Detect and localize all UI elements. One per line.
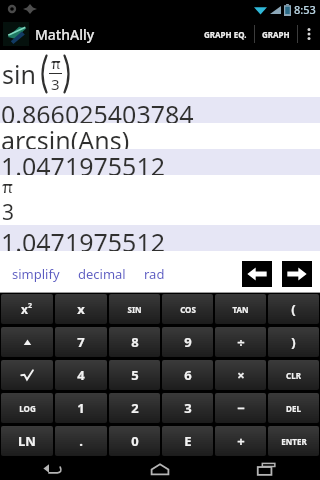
button[interactable]: GRAPH	[255, 18, 297, 50]
staticText: sin	[2, 57, 36, 91]
button[interactable]: simplify	[10, 261, 62, 287]
staticText: E	[184, 432, 192, 450]
button[interactable]: 0	[109, 426, 160, 456]
staticText: )	[291, 333, 296, 351]
staticText: simplify	[12, 265, 60, 283]
staticText: 1.0471975512	[1, 225, 166, 251]
button[interactable]: DEL	[268, 393, 319, 423]
staticText: 8	[131, 333, 139, 351]
button[interactable]: Move right	[282, 261, 312, 287]
button[interactable]: ÷	[215, 327, 266, 357]
button[interactable]: 6	[162, 360, 213, 390]
staticText: SIN	[127, 304, 142, 315]
staticText: ×	[237, 366, 245, 384]
button[interactable]: GRAPH EQ.	[197, 18, 254, 50]
staticText: 3	[2, 198, 15, 225]
button[interactable]: 1	[55, 393, 107, 423]
button[interactable]: 1.0471975512	[0, 149, 320, 175]
staticText: 1	[77, 399, 85, 417]
staticText: 6	[184, 366, 192, 384]
staticText: 8:53	[294, 2, 316, 17]
staticText: π	[51, 53, 61, 73]
button[interactable]: sin	[0, 50, 320, 97]
button[interactable]: SIN	[109, 294, 160, 324]
button[interactable]: 4	[55, 360, 107, 390]
button[interactable]: Move left	[242, 261, 272, 287]
staticText: 3	[51, 74, 60, 94]
button[interactable]	[1, 327, 53, 357]
button[interactable]: .	[55, 426, 107, 456]
button[interactable]: 3	[162, 393, 213, 423]
staticText: +	[237, 432, 245, 450]
button[interactable]: x	[1, 294, 53, 324]
button[interactable]: COS	[162, 294, 213, 324]
button[interactable]: π	[0, 175, 320, 225]
button[interactable]: )	[268, 327, 319, 357]
button[interactable]: TAN	[215, 294, 266, 324]
button[interactable]: −	[215, 393, 266, 423]
button[interactable]: CLR	[268, 360, 319, 390]
staticText: 4	[77, 366, 85, 384]
staticText: 1.0471975512	[1, 149, 166, 175]
staticText: LN	[18, 432, 36, 450]
button[interactable]: 1.0471975512	[0, 225, 320, 251]
staticText: rad	[144, 265, 165, 283]
button[interactable]: (	[268, 294, 319, 324]
button[interactable]: decimal	[76, 261, 128, 287]
staticText: 9	[184, 333, 192, 351]
button[interactable]: LN	[1, 426, 53, 456]
button[interactable]: 0.866025403784	[0, 97, 320, 123]
staticText: LOG	[19, 403, 36, 414]
staticText: π	[2, 175, 14, 198]
staticText: ÷	[237, 333, 245, 351]
staticText: arcsin(Ans)	[1, 123, 130, 149]
staticText: x	[21, 301, 28, 317]
button[interactable]: 8	[109, 327, 160, 357]
button[interactable]: 9	[162, 327, 213, 357]
button[interactable]: E	[162, 426, 213, 456]
staticText: 3	[184, 399, 192, 417]
staticText: decimal	[78, 265, 126, 283]
button[interactable]: 7	[55, 327, 107, 357]
button[interactable]: x	[55, 294, 107, 324]
button[interactable]: ENTER	[268, 426, 319, 456]
button[interactable]: More options	[298, 18, 320, 50]
staticText: MathAlly	[35, 25, 95, 44]
button[interactable]: rad	[142, 261, 167, 287]
staticText: GRAPH EQ.	[204, 29, 247, 40]
button[interactable]: 5	[109, 360, 160, 390]
staticText: −	[237, 399, 245, 417]
button[interactable]: Recent apps	[213, 458, 320, 480]
staticText: 0.866025403784	[1, 97, 194, 123]
button[interactable]: LOG	[1, 393, 53, 423]
staticText: (	[291, 300, 296, 318]
staticText: .	[79, 432, 83, 450]
staticText: 2	[28, 301, 33, 311]
staticText: TAN	[232, 304, 249, 315]
button[interactable]: ×	[215, 360, 266, 390]
button[interactable]: arcsin(Ans)	[0, 123, 320, 149]
staticText: x	[77, 300, 85, 318]
staticText: 2	[131, 399, 139, 417]
staticText: GRAPH	[262, 29, 290, 40]
button[interactable]: 2	[109, 393, 160, 423]
staticText: 7	[77, 333, 85, 351]
staticText: 5	[131, 366, 139, 384]
button[interactable]: Home	[106, 458, 213, 480]
button[interactable]	[1, 360, 53, 390]
button[interactable]: Back	[0, 458, 106, 480]
staticText: CLR	[286, 370, 301, 381]
button[interactable]: +	[215, 426, 266, 456]
staticText: ENTER	[281, 436, 307, 447]
staticText: COS	[180, 304, 196, 315]
staticText: DEL	[286, 403, 301, 414]
staticText: 0	[131, 432, 139, 450]
